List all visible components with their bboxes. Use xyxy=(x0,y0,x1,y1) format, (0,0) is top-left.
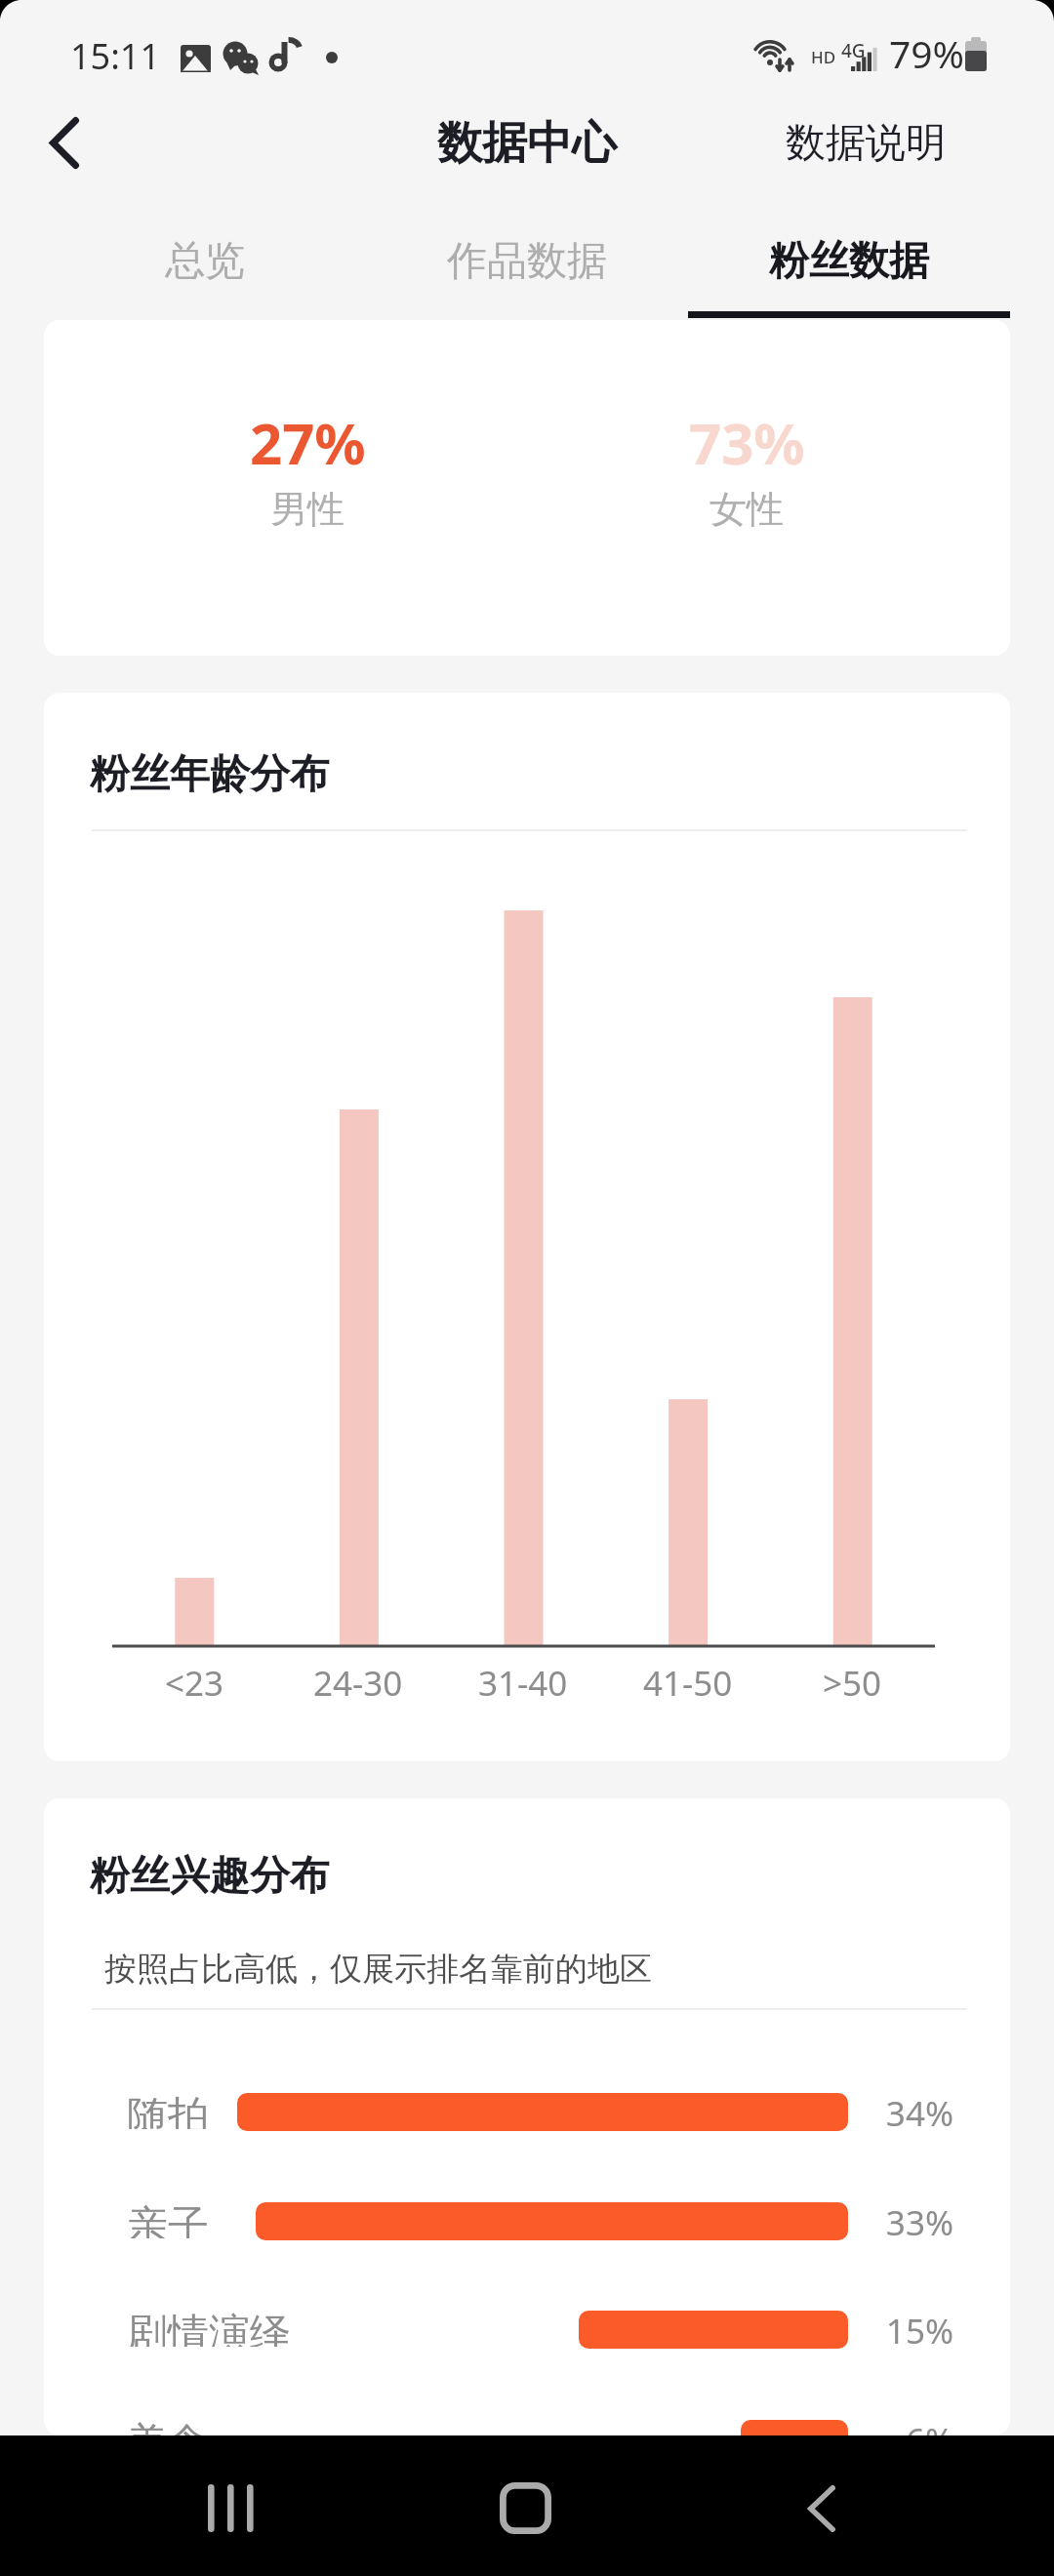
button[interactable]: 随拍 xyxy=(44,2093,1010,2131)
staticText: 31-40 xyxy=(478,1660,568,1707)
staticText: 男性 xyxy=(270,486,345,533)
staticText: 数据中心 xyxy=(437,115,617,172)
button[interactable]: 总览 xyxy=(44,205,366,318)
staticText: 15:11 xyxy=(70,32,161,80)
button[interactable]: 数据说明 xyxy=(764,95,967,192)
staticText: 33% xyxy=(836,2199,953,2237)
staticText: <23 xyxy=(165,1660,224,1707)
staticText: 27% xyxy=(250,404,366,481)
button[interactable]: 粉丝数据 xyxy=(688,205,1010,318)
staticText: 总览 xyxy=(165,236,245,287)
staticText: 随拍 xyxy=(127,2091,209,2129)
staticText: 数据说明 xyxy=(786,118,946,169)
button[interactable]: Home xyxy=(466,2437,584,2576)
staticText: 34% xyxy=(836,2090,953,2128)
staticText: 美食 xyxy=(127,2418,209,2435)
button[interactable]: 亲子 xyxy=(44,2202,1010,2240)
staticText: 4G xyxy=(841,38,866,63)
staticText: 6% xyxy=(836,2417,953,2435)
staticText: 剧情演绎 xyxy=(127,2309,291,2347)
staticText: 73% xyxy=(689,404,805,481)
button[interactable]: 美食 xyxy=(44,2420,1010,2435)
staticText: HD xyxy=(811,46,836,68)
staticText: 粉丝兴趣分布 xyxy=(90,1851,330,1902)
staticText: 按照占比高低，仅展示排名靠前的地区 xyxy=(104,1949,652,1990)
button[interactable]: 剧情演绎 xyxy=(44,2311,1010,2349)
staticText: 41-50 xyxy=(643,1660,733,1707)
button[interactable]: Recent apps xyxy=(172,2437,289,2576)
button[interactable]: 作品数据 xyxy=(366,205,688,318)
staticText: >50 xyxy=(823,1660,882,1707)
staticText: 粉丝年龄分布 xyxy=(90,749,330,800)
staticText: 粉丝数据 xyxy=(769,236,929,287)
button[interactable]: Back xyxy=(13,92,115,194)
staticText: 15% xyxy=(836,2308,953,2346)
staticText: 亲子 xyxy=(127,2200,209,2238)
staticText: 作品数据 xyxy=(447,236,607,287)
staticText: 79% xyxy=(889,27,965,79)
staticText: 女性 xyxy=(709,486,784,533)
staticText: 24-30 xyxy=(313,1660,403,1707)
button[interactable]: Back xyxy=(763,2438,880,2576)
